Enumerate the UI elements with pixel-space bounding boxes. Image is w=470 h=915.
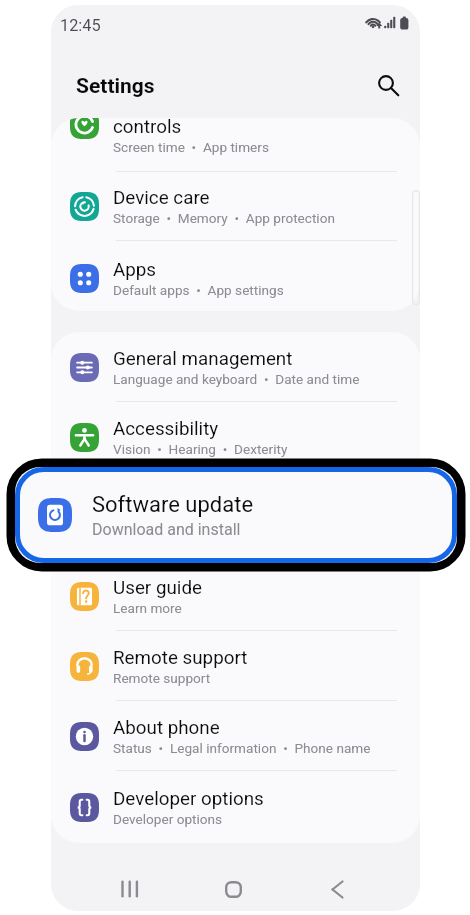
staticText: Digital Wellbeing and parental controls [113,118,361,138]
staticText: Storage • Memory • App protection [113,210,335,226]
button[interactable]: Accessibility [51,402,420,472]
staticText: Screen time • App timers [113,139,269,155]
button[interactable]: Recent apps [110,870,148,908]
staticText: Learn more [113,600,182,616]
button[interactable]: Digital Wellbeing and parental controls [51,118,420,172]
staticText: Remote support [113,670,211,686]
staticText: Device care [113,187,210,209]
button[interactable]: About phone [51,701,420,771]
button[interactable]: Software update [51,472,420,562]
staticText: Remote support [113,647,248,669]
staticText: Download and install [92,520,241,539]
staticText: 12:45 [60,16,101,35]
staticText: About phone [113,717,220,739]
staticText: Accessibility [113,418,219,440]
button[interactable]: Remote support [51,631,420,701]
button[interactable]: Back [318,870,356,908]
staticText: Language and keyboard • Date and time [113,371,360,387]
button[interactable]: Device care [51,172,420,241]
button[interactable]: User guide [51,562,420,631]
staticText: Status • Legal information • Phone name [113,740,371,756]
button[interactable]: Software update [15,467,457,563]
staticText: Download and install [113,521,240,537]
staticText: Developer options [113,811,223,827]
button[interactable]: Developer options [51,771,420,843]
staticText: User guide [113,577,202,599]
button[interactable]: Apps [51,241,420,311]
button[interactable]: Home [214,870,252,908]
button[interactable]: Search [369,68,404,103]
staticText: Default apps • App settings [113,282,284,298]
button[interactable]: General management [51,332,420,402]
staticText: Software update [92,492,254,518]
staticText: Software update [113,498,251,520]
staticText: General management [113,348,293,370]
staticText: Developer options [113,788,264,810]
staticText: Vision • Hearing • Dexterity [113,441,288,457]
staticText: Settings [76,74,155,99]
staticText: Apps [113,259,157,281]
